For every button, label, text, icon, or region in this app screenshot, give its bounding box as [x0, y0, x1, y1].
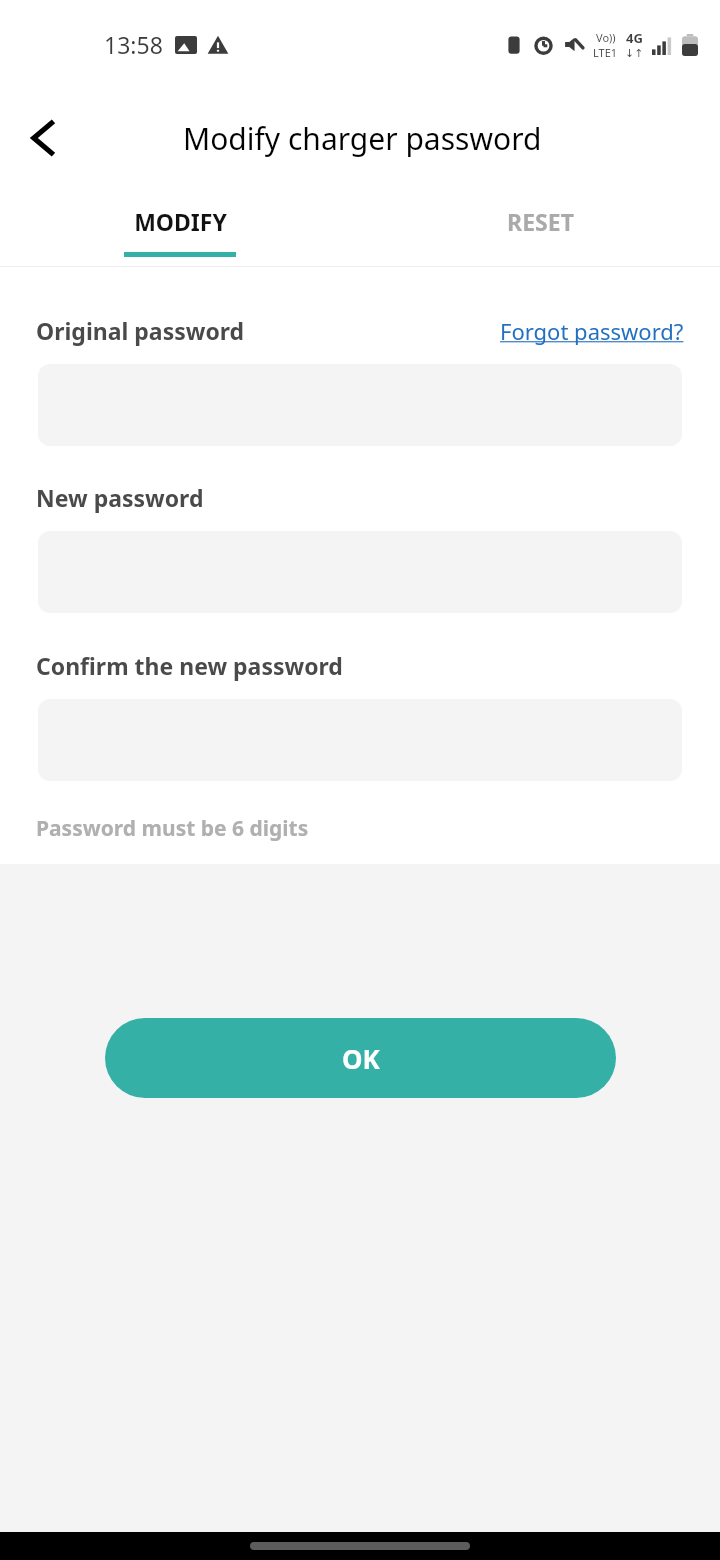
staticText: New password — [36, 482, 204, 513]
staticText: Forgot password? — [500, 316, 684, 346]
button[interactable]: RESET — [360, 188, 720, 266]
button[interactable]: OK — [105, 1018, 616, 1098]
button[interactable]: MODIFY — [0, 188, 360, 266]
staticText: ↓↑ — [625, 47, 644, 60]
staticText: 13:58 — [104, 29, 163, 60]
staticText: OK — [342, 1041, 380, 1076]
staticText: Original password — [36, 315, 245, 346]
staticText: Confirm the new password — [36, 650, 343, 681]
button[interactable]: Forgot password? — [500, 316, 684, 346]
staticText: MODIFY — [134, 206, 227, 237]
staticText: Vo)) — [596, 30, 616, 45]
staticText: Modify charger password — [183, 118, 542, 159]
button[interactable]: Back — [8, 102, 80, 174]
staticText: LTE1 — [593, 45, 618, 60]
staticText: 4G — [626, 29, 643, 47]
staticText: Password must be 6 digits — [36, 814, 309, 843]
staticText: RESET — [507, 206, 574, 237]
